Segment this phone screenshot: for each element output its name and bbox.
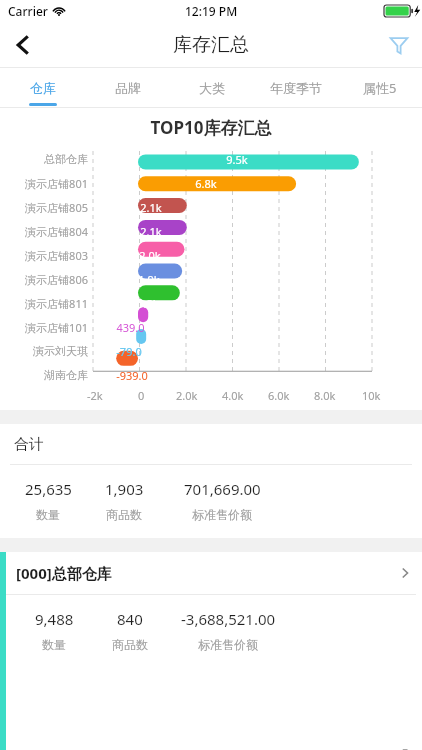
staticText: 9.5k <box>226 152 248 167</box>
staticText: 总部仓库 <box>0 152 88 166</box>
staticText: Carrier <box>8 3 48 19</box>
button[interactable]: [000]总部仓库 <box>6 552 422 594</box>
staticText: 25,635 <box>25 479 72 499</box>
button[interactable]: 属性5 <box>338 68 422 108</box>
button[interactable]: 品牌 <box>85 68 170 108</box>
staticText: 商品数 <box>112 637 148 652</box>
staticText: 6.8k <box>195 176 217 191</box>
staticText: 数量 <box>42 637 66 652</box>
staticText: 演示店铺805 <box>0 200 88 215</box>
staticText: 演示店铺806 <box>0 272 88 287</box>
staticText: TOP10库存汇总 <box>0 116 422 139</box>
staticText: 1.9k <box>138 272 160 287</box>
staticText: 10k <box>362 388 381 403</box>
staticText: 演示店铺101 <box>0 320 88 335</box>
button[interactable]: Back <box>0 22 46 68</box>
button[interactable]: Filter <box>376 22 422 68</box>
staticText: 2.1k <box>140 200 162 215</box>
staticText: 大类 <box>199 80 225 96</box>
staticText: 标准售价额 <box>198 637 258 652</box>
button[interactable]: 年度季节 <box>254 68 338 108</box>
staticText: -2k <box>87 388 103 403</box>
staticText: 12:19 PM <box>185 3 238 19</box>
staticText: 6.0k <box>268 388 290 403</box>
staticText: 属性5 <box>363 79 397 97</box>
staticText: 数量 <box>36 507 60 522</box>
staticText: -79.0 <box>116 344 142 359</box>
staticText: 9,488 <box>35 609 74 629</box>
staticText: 演示店铺804 <box>0 224 88 239</box>
staticText: 库存汇总 <box>173 33 249 57</box>
staticText: 演示店铺811 <box>0 296 88 311</box>
staticText: 商品数 <box>106 507 142 522</box>
staticText: 0 <box>138 388 145 403</box>
staticText: 2.0k <box>139 248 161 263</box>
staticText: 1.8k <box>137 296 159 311</box>
staticText: [000]总部仓库 <box>16 563 112 583</box>
staticText: 4.0k <box>222 388 244 403</box>
staticText: 演示店铺803 <box>0 248 88 263</box>
button[interactable]: 大类 <box>170 68 254 108</box>
staticText: 1,903 <box>105 479 144 499</box>
staticText: -939.0 <box>116 368 148 383</box>
staticText: 840 <box>117 609 143 629</box>
staticText: 标准售价额 <box>192 507 252 522</box>
button[interactable]: 仓库 <box>0 68 85 108</box>
staticText: 2.1k <box>140 224 162 239</box>
staticText: 439.0 <box>116 320 145 335</box>
staticText: 演示刘天琪 <box>0 344 88 358</box>
staticText: 品牌 <box>115 80 141 96</box>
staticText: 701,669.00 <box>184 479 261 499</box>
staticText: 合计 <box>14 435 44 454</box>
staticText: 演示店铺801 <box>0 176 88 191</box>
staticText: 8.0k <box>314 388 336 403</box>
staticText: -3,688,521.00 <box>181 609 276 629</box>
staticText: 年度季节 <box>270 80 322 96</box>
staticText: 2.0k <box>176 388 198 403</box>
staticText: 仓库 <box>30 80 56 96</box>
staticText: 湖南仓库 <box>0 368 88 382</box>
